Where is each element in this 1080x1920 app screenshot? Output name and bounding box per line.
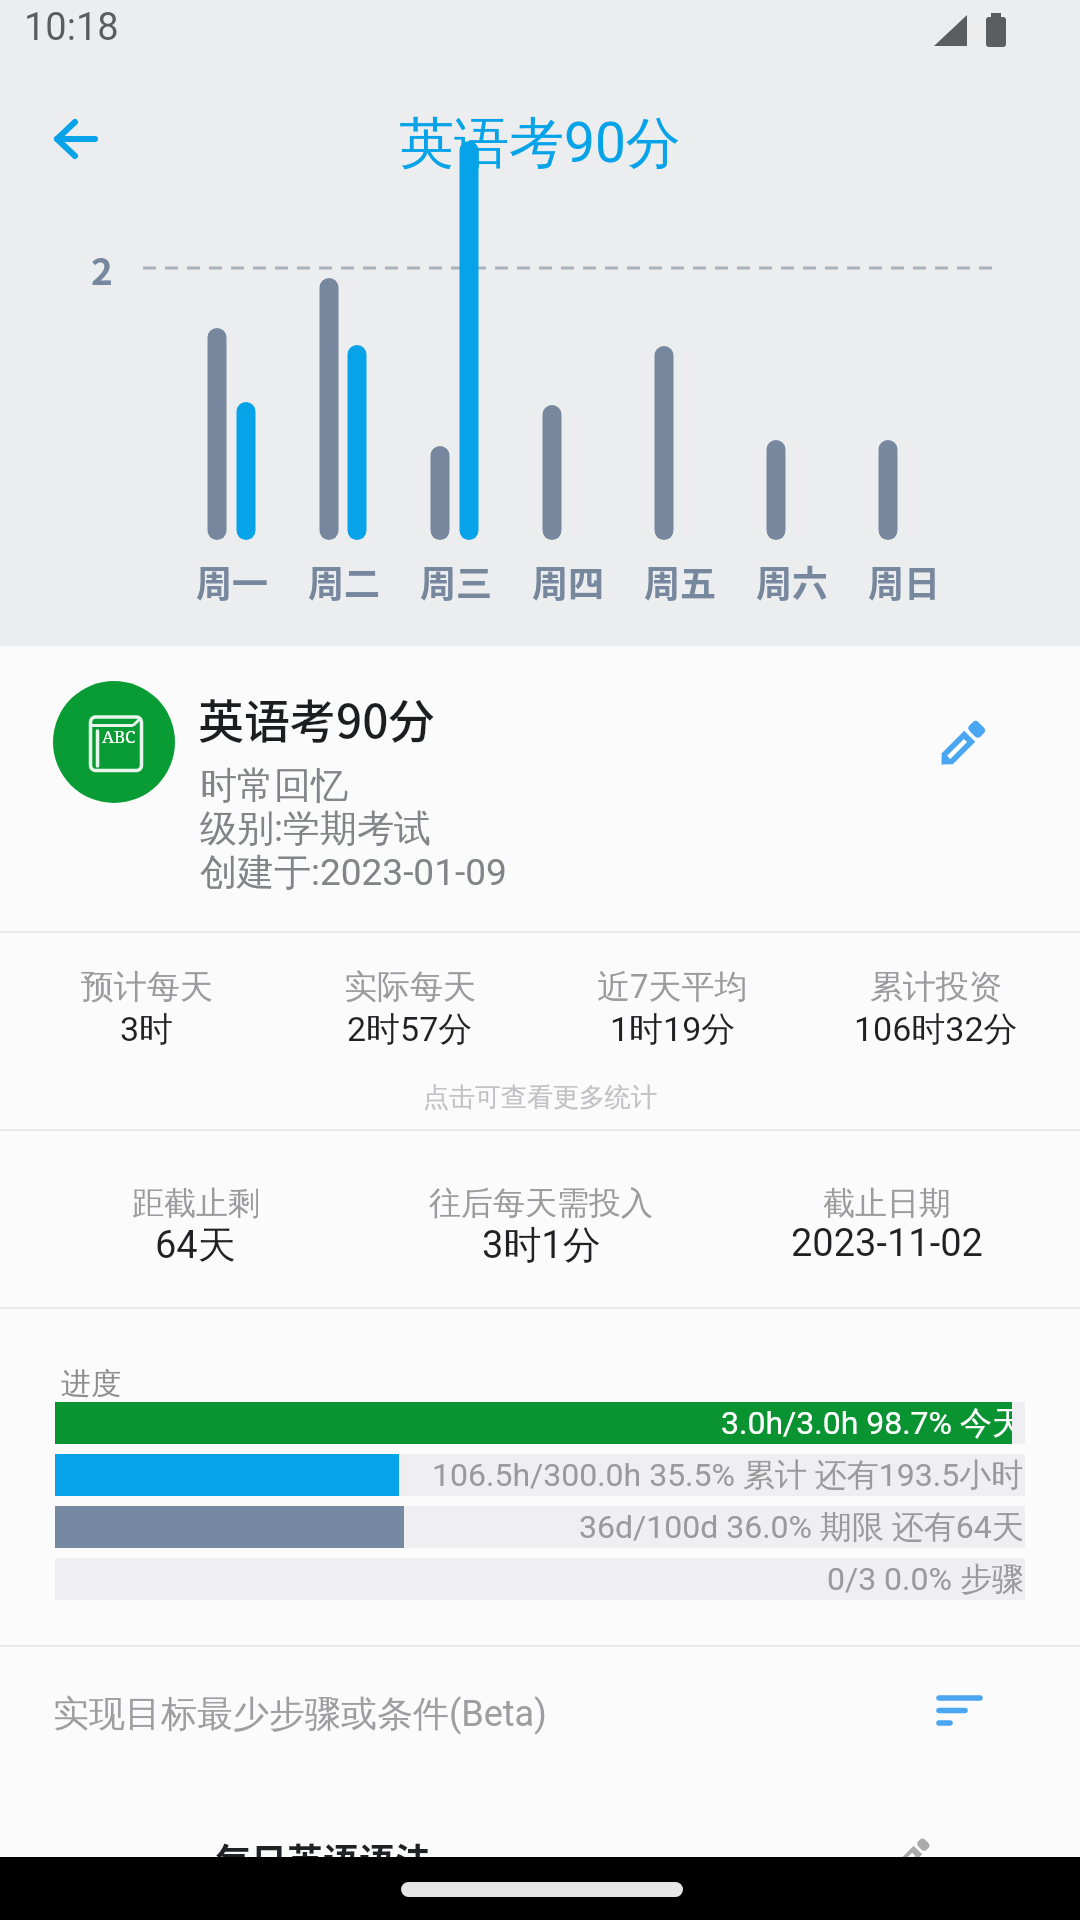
- staticText: 3时: [120, 1008, 174, 1051]
- staticText: 3时1分: [482, 1221, 601, 1269]
- button[interactable]: [38, 102, 112, 176]
- staticText: 创建于:2023-01-09: [200, 849, 507, 896]
- staticText: 英语考90分: [198, 685, 435, 752]
- staticText: ABC: [102, 725, 136, 748]
- staticText: 周三: [420, 555, 493, 607]
- button[interactable]: [0, 1800, 1080, 1857]
- staticText: 2023-11-02: [791, 1221, 983, 1266]
- staticText: 时常回忆: [200, 762, 348, 809]
- staticText: 累计投资: [870, 966, 1002, 1008]
- staticText: 周五: [644, 555, 717, 607]
- staticText: 周二: [308, 555, 381, 607]
- staticText: 每日英语语法: [215, 1833, 432, 1885]
- staticText: 英语考90分: [399, 109, 681, 178]
- button[interactable]: [0, 955, 1080, 1070]
- staticText: 距截止剩: [132, 1183, 260, 1223]
- staticText: 106时32分: [854, 1008, 1018, 1051]
- staticText: 实现目标最少步骤或条件(Beta): [53, 1691, 547, 1736]
- staticText: 预计每天: [81, 966, 213, 1008]
- staticText: 3.0h/3.0h 98.7% 今天: [721, 1403, 1012, 1443]
- staticText: 36d/100d 36.0% 期限 还有64天: [579, 1507, 1024, 1547]
- staticText: 截止日期: [823, 1183, 951, 1223]
- staticText: 周日: [868, 555, 941, 607]
- staticText: 级别:学期考试: [200, 805, 431, 852]
- staticText: 2时57分: [347, 1008, 473, 1051]
- button[interactable]: [917, 1672, 1012, 1757]
- staticText: 近7天平均: [597, 966, 748, 1008]
- staticText: 2: [91, 242, 113, 296]
- staticText: 点击可查看更多统计: [423, 1081, 657, 1114]
- staticText: 1时19分: [610, 1008, 736, 1051]
- staticText: 0/3 0.0% 步骤: [827, 1559, 1024, 1599]
- staticText: 实际每天: [344, 966, 476, 1008]
- staticText: 周一: [196, 555, 269, 607]
- button[interactable]: [920, 700, 1006, 786]
- staticText: 106.5h/300.0h 35.5% 累计 还有193.5小时: [432, 1455, 1024, 1495]
- staticText: 周六: [756, 555, 829, 607]
- staticText: 10:18: [24, 5, 119, 50]
- staticText: 往后每天需投入: [429, 1183, 653, 1223]
- staticText: 进度: [61, 1365, 121, 1403]
- staticText: 64天: [155, 1221, 236, 1269]
- staticText: 周四: [532, 555, 605, 607]
